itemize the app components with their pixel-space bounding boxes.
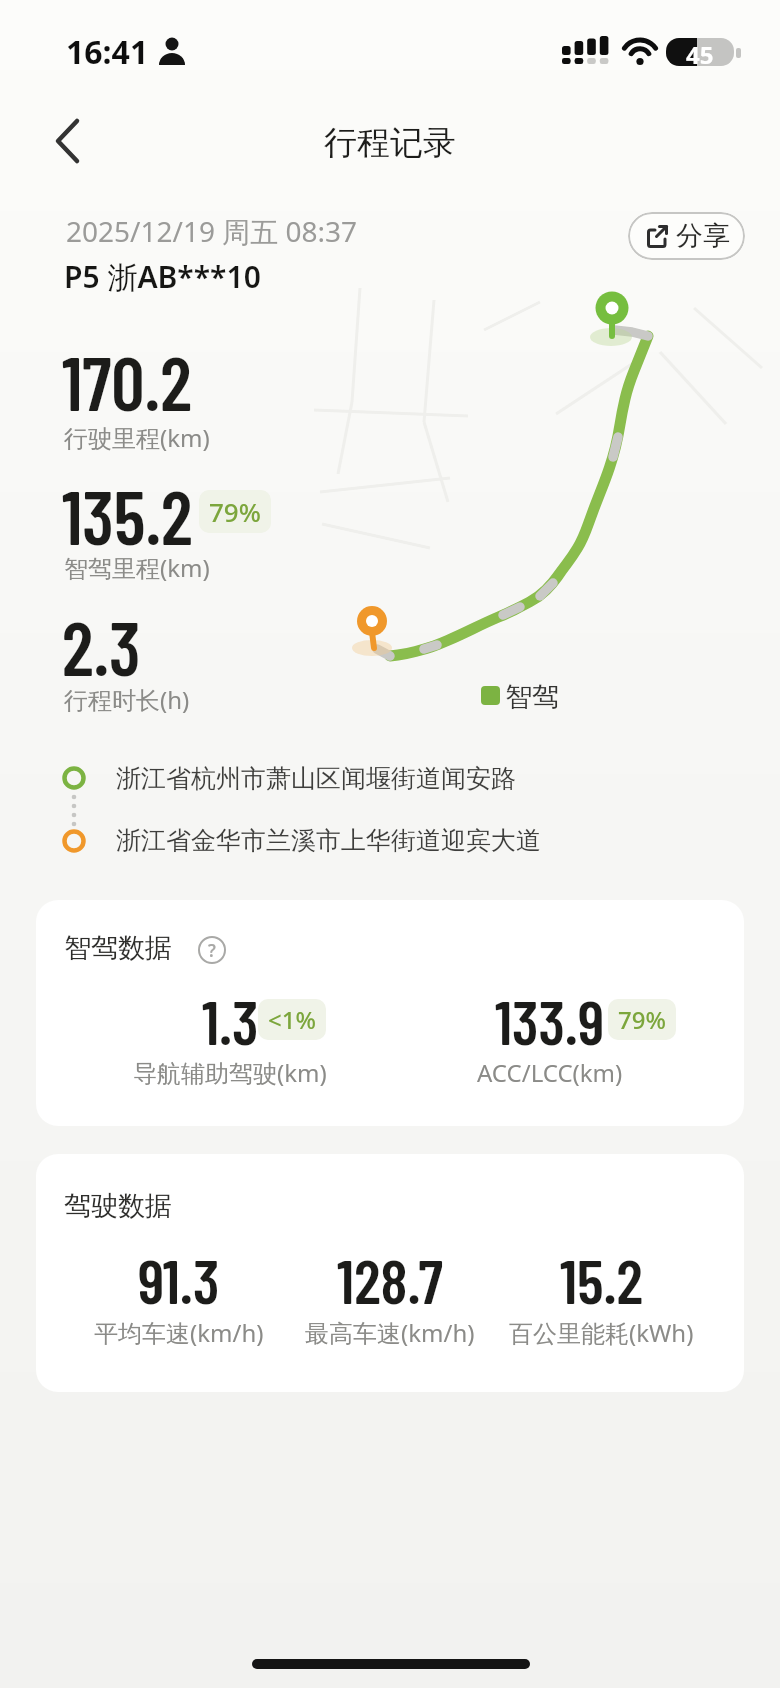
staticText: 百公里能耗(kWh)	[509, 1316, 694, 1349]
staticText: 浙江省金华市兰溪市上华街道迎宾大道	[116, 825, 541, 856]
button[interactable]	[44, 116, 92, 166]
staticText: 135.2	[62, 471, 193, 560]
staticText: 45	[686, 38, 714, 66]
staticText: 行程记录	[324, 122, 456, 164]
staticText: 16:41	[66, 30, 149, 74]
staticText: 智驾	[505, 680, 559, 714]
staticText: 15.2	[560, 1242, 643, 1314]
staticText: P5 浙AB***10	[64, 256, 261, 297]
staticText: 行程时长(h)	[64, 683, 190, 716]
button[interactable]	[36, 900, 744, 1126]
staticText: 128.7	[337, 1242, 443, 1314]
staticText: 1.3	[202, 983, 259, 1055]
staticText: <1%	[268, 1003, 316, 1036]
staticText: 智驾里程(km)	[64, 551, 210, 584]
staticText: 91.3	[138, 1242, 220, 1314]
staticText: 最高车速(km/h)	[305, 1316, 475, 1349]
staticText: ?	[208, 939, 216, 962]
staticText: 分享	[676, 219, 730, 253]
staticText: 导航辅助驾驶(km)	[133, 1056, 327, 1089]
staticText: ACC/LCC(km)	[477, 1056, 623, 1089]
staticText: 133.9	[495, 983, 605, 1055]
staticText: 平均车速(km/h)	[94, 1316, 264, 1349]
staticText: 170.2	[62, 337, 192, 426]
staticText: 79%	[618, 1003, 666, 1036]
staticText: 浙江省杭州市萧山区闻堰街道闻安路	[116, 763, 516, 794]
staticText: 79%	[209, 494, 261, 529]
staticText: 驾驶数据	[64, 1189, 172, 1223]
staticText: 智驾数据	[64, 931, 172, 965]
button[interactable]: 分享	[628, 212, 745, 260]
staticText: 2.3	[62, 602, 141, 691]
staticText: 行驶里程(km)	[64, 421, 210, 454]
staticText: 2025/12/19 周五 08:37	[66, 212, 358, 250]
button[interactable]	[36, 1154, 744, 1392]
